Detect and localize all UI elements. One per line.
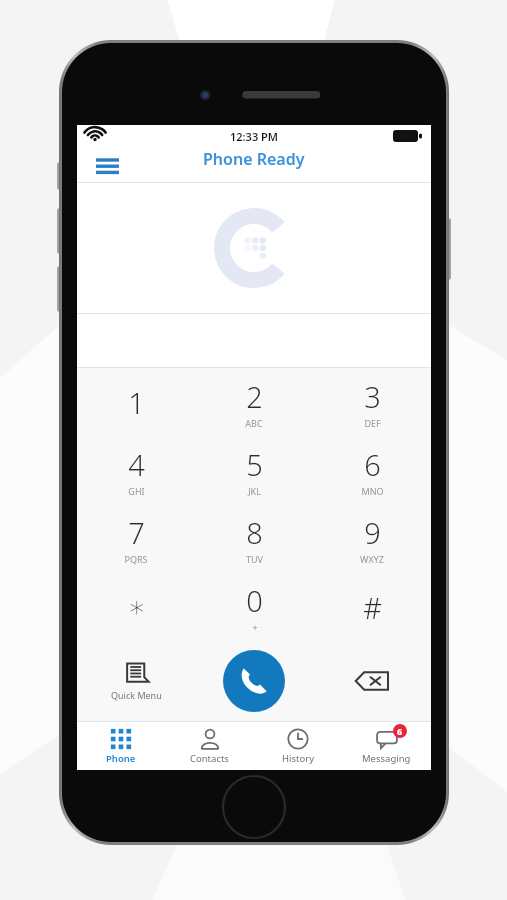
staticText: ABC <box>245 417 263 429</box>
button[interactable]: 7 <box>77 505 195 573</box>
staticText: 4 <box>128 445 145 484</box>
staticText: GHI <box>128 485 145 497</box>
staticText: WXYZ <box>360 553 384 565</box>
button[interactable]: 9 <box>313 505 431 573</box>
staticText: TUV <box>246 553 263 565</box>
button[interactable]: 3 <box>313 368 431 437</box>
button[interactable]: 6 <box>342 722 431 770</box>
staticText: 5 <box>246 445 263 484</box>
button[interactable]: 2 <box>195 368 313 437</box>
staticText: 3 <box>364 377 381 416</box>
staticText: 12:33 PM <box>230 129 279 144</box>
staticText: 1 <box>128 383 145 422</box>
button[interactable]: Call <box>223 650 285 712</box>
staticText: JKL <box>248 485 261 497</box>
button[interactable]: 4 <box>77 437 195 505</box>
staticText: Phone <box>106 752 136 765</box>
button[interactable]: 5 <box>195 437 313 505</box>
staticText: 8 <box>246 513 263 552</box>
button[interactable]: 8 <box>195 505 313 573</box>
button[interactable]: 1 <box>77 368 195 437</box>
button[interactable]: Delete <box>313 641 431 721</box>
button[interactable]: # <box>313 573 431 641</box>
staticText: 0 <box>246 581 263 620</box>
button[interactable]: Menu <box>90 148 124 182</box>
button[interactable]: ∗ <box>77 573 195 641</box>
staticText: History <box>282 752 314 765</box>
button[interactable]: Contacts <box>165 722 253 770</box>
staticText: PQRS <box>124 553 148 565</box>
staticText: 2 <box>246 377 263 416</box>
staticText: Phone Ready <box>203 148 305 170</box>
staticText: 9 <box>364 513 381 552</box>
staticText: DEF <box>364 417 381 429</box>
staticText: MNO <box>361 485 384 497</box>
staticText: 6 <box>397 725 403 737</box>
staticText: # <box>363 588 382 627</box>
staticText: 6 <box>364 445 381 484</box>
button[interactable]: History <box>253 722 342 770</box>
button[interactable]: Quick Menu <box>77 641 195 721</box>
button[interactable]: Phone <box>77 722 165 770</box>
staticText: ∗ <box>127 590 146 624</box>
button[interactable]: 6 <box>313 437 431 505</box>
staticText: Messaging <box>362 752 411 765</box>
staticText: + <box>252 621 258 633</box>
staticText: Contacts <box>190 752 229 765</box>
button[interactable]: 0 <box>195 573 313 641</box>
staticText: 7 <box>128 513 145 552</box>
staticText: Quick Menu <box>111 689 162 701</box>
